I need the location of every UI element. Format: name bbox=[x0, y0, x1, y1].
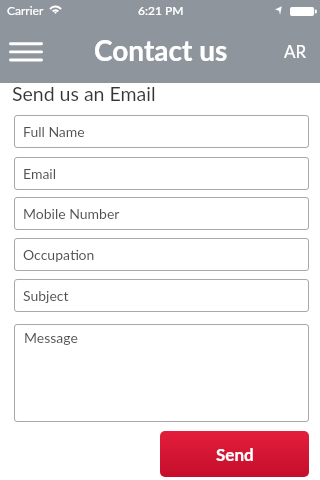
staticText: Occupation bbox=[23, 246, 95, 263]
staticText: Mobile Number bbox=[23, 205, 120, 222]
staticText: Send us an Email bbox=[12, 82, 156, 105]
staticText: Email bbox=[23, 165, 57, 182]
button[interactable]: Occupation bbox=[14, 238, 309, 271]
staticText: Message bbox=[24, 329, 78, 346]
staticText: Subject bbox=[23, 287, 69, 304]
button[interactable]: Switch language to Arabic bbox=[277, 37, 313, 65]
button[interactable]: Email bbox=[14, 157, 309, 190]
button[interactable]: Message bbox=[14, 324, 309, 422]
staticText: 6:21 PM bbox=[138, 3, 184, 17]
button[interactable]: Mobile Number bbox=[14, 197, 309, 230]
staticText: Carrier bbox=[7, 3, 44, 17]
button[interactable]: Send bbox=[160, 431, 309, 477]
staticText: Contact us bbox=[94, 33, 228, 67]
staticText: AR bbox=[284, 41, 307, 61]
staticText: Send bbox=[216, 444, 254, 464]
button[interactable]: Full Name bbox=[14, 115, 309, 148]
staticText: Full Name bbox=[23, 123, 85, 140]
button[interactable]: Subject bbox=[14, 279, 309, 312]
button[interactable]: Open navigation menu bbox=[3, 29, 49, 59]
